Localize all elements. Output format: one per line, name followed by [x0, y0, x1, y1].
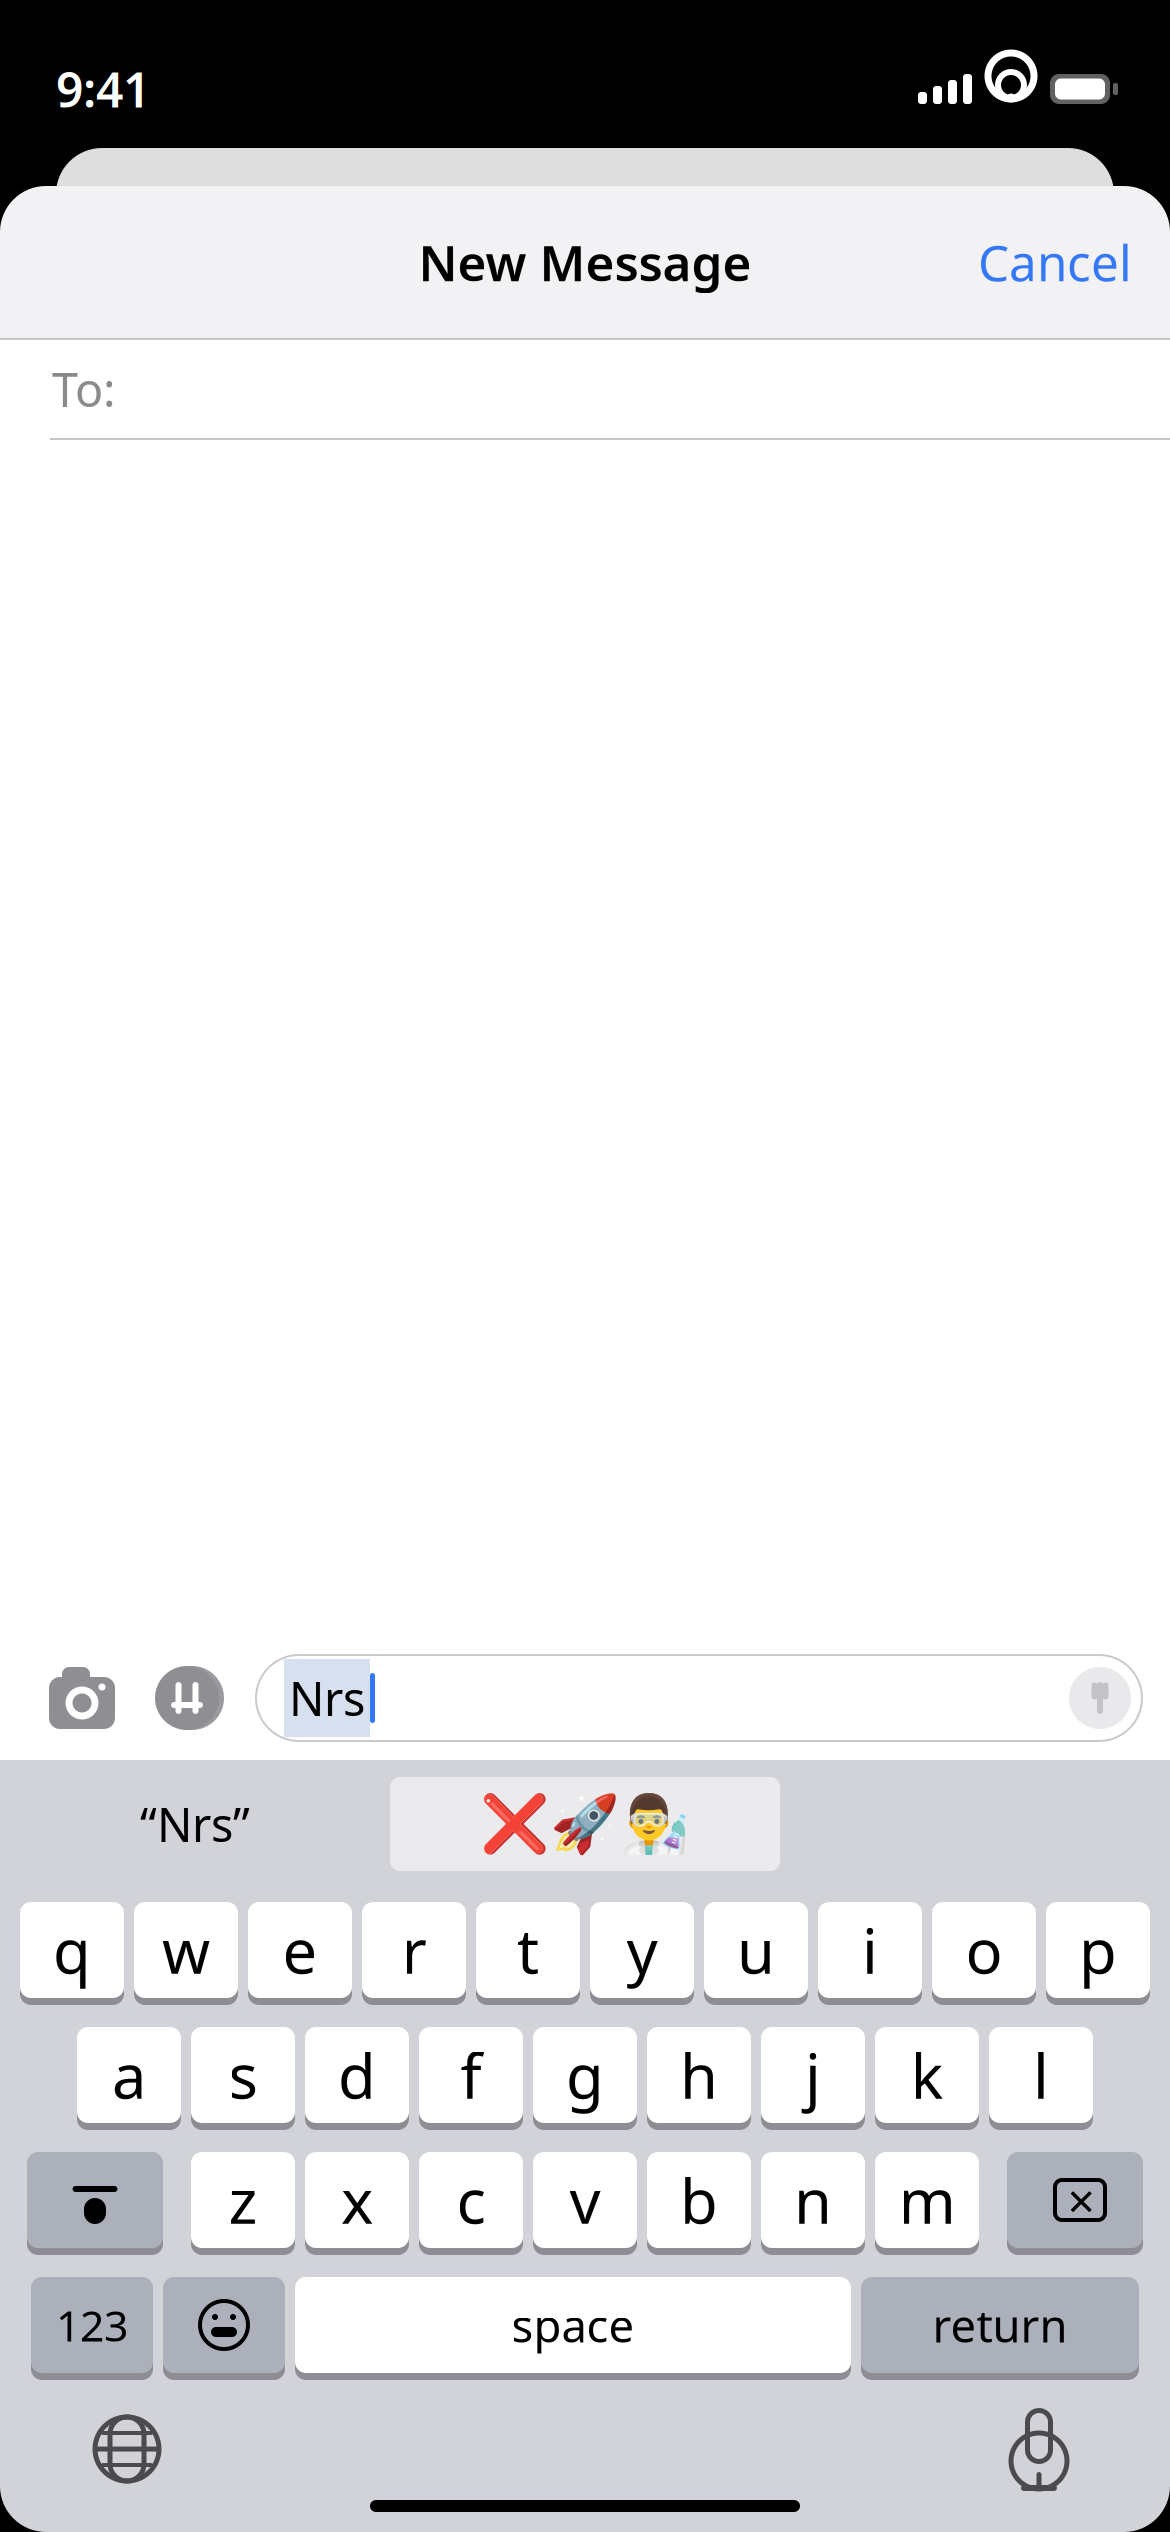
staticText: x	[341, 2159, 373, 2241]
staticText: ❌🚀👨‍🔬	[480, 1792, 690, 1856]
button[interactable]: a	[77, 2027, 181, 2130]
button[interactable]: Dictate	[1002, 2406, 1076, 2492]
staticText: p	[1079, 1909, 1117, 1991]
staticText: v	[569, 2159, 600, 2241]
staticText: g	[566, 2034, 604, 2116]
button[interactable]: 123	[31, 2277, 153, 2380]
staticText: 123	[56, 2297, 128, 2353]
staticText: Cancel	[978, 229, 1132, 295]
staticText: return	[932, 2295, 1067, 2355]
staticText: “Nrs”	[140, 1793, 250, 1855]
button[interactable]: w	[134, 1902, 238, 2005]
button[interactable]: Delete	[1007, 2152, 1143, 2255]
button[interactable]: To:	[0, 340, 1170, 438]
button[interactable]: Shift	[27, 2152, 163, 2255]
button[interactable]: c	[419, 2152, 523, 2255]
staticText: h	[680, 2034, 718, 2116]
staticText: a	[112, 2034, 146, 2116]
button[interactable]: g	[533, 2027, 637, 2130]
button[interactable]: p	[1046, 1902, 1150, 2005]
staticText: o	[965, 1909, 1002, 1991]
button[interactable]: “Nrs”	[0, 1777, 390, 1871]
staticText: New Message	[418, 229, 751, 295]
staticText: m	[898, 2159, 955, 2241]
button[interactable]: Emoji	[163, 2277, 285, 2380]
button[interactable]: m	[875, 2152, 979, 2255]
button[interactable]: j	[761, 2027, 865, 2130]
button[interactable]: n	[761, 2152, 865, 2255]
staticText: j	[805, 2034, 821, 2116]
button[interactable]: f	[419, 2027, 523, 2130]
staticText: e	[282, 1909, 317, 1991]
staticText: c	[456, 2159, 485, 2241]
button[interactable]: i	[818, 1902, 922, 2005]
button[interactable]: s	[191, 2027, 295, 2130]
staticText: To:	[52, 358, 116, 420]
button[interactable]: b	[647, 2152, 751, 2255]
staticText: b	[680, 2159, 718, 2241]
button[interactable]: q	[20, 1902, 124, 2005]
staticText: d	[338, 2034, 376, 2116]
button[interactable]: Apps	[148, 1662, 226, 1734]
button[interactable]: return	[861, 2277, 1139, 2380]
staticText: q	[53, 1909, 91, 1991]
button[interactable]: y	[590, 1902, 694, 2005]
staticText: z	[228, 2159, 257, 2241]
staticText: n	[794, 2159, 832, 2241]
button[interactable]: v	[533, 2152, 637, 2255]
button[interactable]: o	[932, 1902, 1036, 2005]
staticText: f	[460, 2034, 481, 2116]
staticText: r	[401, 1909, 426, 1991]
button[interactable]: h	[647, 2027, 751, 2130]
button[interactable]: z	[191, 2152, 295, 2255]
staticText: w	[162, 1909, 210, 1991]
button[interactable]: k	[875, 2027, 979, 2130]
button[interactable]: e	[248, 1902, 352, 2005]
button[interactable]: space	[295, 2277, 851, 2380]
staticText: Nrs	[289, 1667, 365, 1729]
button[interactable]: u	[704, 1902, 808, 2005]
button[interactable]: Send	[1066, 1664, 1134, 1732]
staticText: t	[517, 1909, 539, 1991]
button[interactable]: l	[989, 2027, 1093, 2130]
staticText: s	[228, 2034, 257, 2116]
staticText: l	[1033, 2034, 1049, 2116]
button[interactable]: x	[305, 2152, 409, 2255]
staticText: k	[910, 2034, 943, 2116]
staticText: space	[511, 2295, 634, 2355]
button[interactable]: ❌🚀👨‍🔬	[390, 1777, 780, 1871]
staticText: i	[862, 1909, 878, 1991]
staticText: 9:41	[56, 57, 150, 121]
button[interactable]: Cancel	[958, 213, 1152, 311]
button[interactable]: d	[305, 2027, 409, 2130]
button[interactable]: r	[362, 1902, 466, 2005]
staticText: ×	[1067, 2168, 1094, 2232]
button[interactable]: Next keyboard	[90, 2412, 164, 2486]
staticText: u	[737, 1909, 775, 1991]
button[interactable]: Take photo	[46, 1662, 118, 1734]
staticText: y	[626, 1909, 657, 1991]
button[interactable]: t	[476, 1902, 580, 2005]
